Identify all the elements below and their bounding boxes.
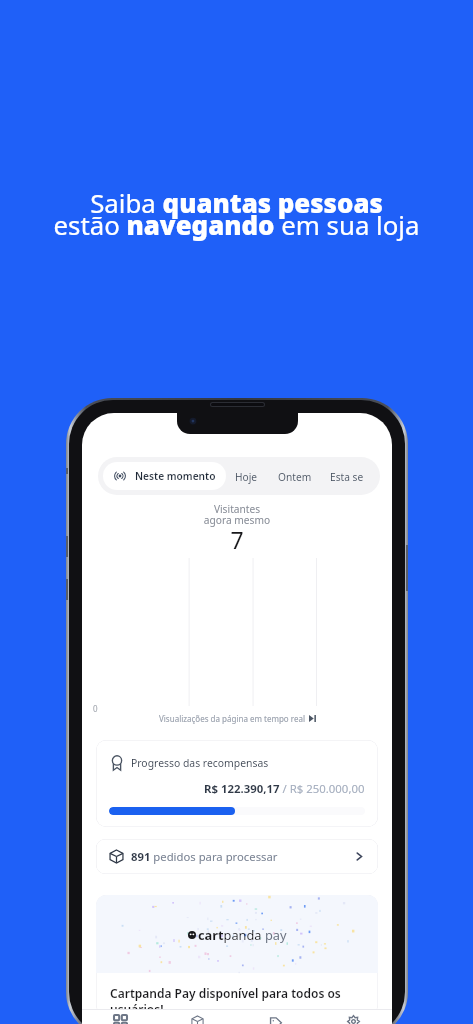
staticText: cartpanda pay xyxy=(198,926,287,943)
staticText: Visualizações da página em tempo real xyxy=(159,713,305,724)
button[interactable]: Ontem xyxy=(275,462,315,491)
staticText: 0 xyxy=(93,703,98,714)
staticText: Cartpanda Pay disponível para todos os u… xyxy=(110,985,341,1015)
button[interactable]: Pedidos xyxy=(159,1015,236,1024)
button[interactable]: 891 pedidos para processar xyxy=(96,839,378,874)
staticText: Ontem xyxy=(278,470,312,484)
staticText: Saiba quantas pessoas estão navegando em… xyxy=(0,185,473,242)
staticText: 7 xyxy=(82,524,392,555)
button[interactable]: cartpanda pay xyxy=(96,895,378,1015)
button[interactable]: Produtos xyxy=(236,1015,314,1024)
button[interactable]: Esta se xyxy=(327,462,367,491)
button[interactable]: Neste momento xyxy=(103,462,226,490)
staticText: Neste momento xyxy=(135,469,216,483)
button[interactable]: Configurações xyxy=(314,1015,392,1024)
button[interactable]: Dashboard xyxy=(82,1015,159,1024)
staticText: R$ 122.390,17 / R$ 250.000,00 xyxy=(204,781,365,797)
button[interactable]: Progresso das recompensas xyxy=(96,740,378,827)
staticText: Progresso das recompensas xyxy=(131,756,269,770)
staticText: Esta se xyxy=(330,470,364,484)
staticText: Hoje xyxy=(235,470,258,484)
staticText: Visitantes agora mesmo xyxy=(82,502,392,527)
staticText: 891 pedidos para processar xyxy=(131,849,278,864)
button[interactable]: Hoje xyxy=(232,462,261,491)
